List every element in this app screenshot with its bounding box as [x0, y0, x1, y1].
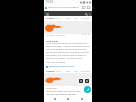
- button[interactable]: Home: [65, 96, 71, 102]
- button[interactable]: NEWS: [65, 70, 71, 73]
- staticText: MAIL: [56, 17, 62, 20]
- button[interactable]: Menu: [44, 11, 92, 17]
- staticText: CYPRUS: [46, 70, 55, 73]
- staticText: CYPRUS: [46, 17, 55, 20]
- button[interactable]: NEWS: [65, 17, 71, 20]
- staticText: OUR VIEW: [46, 39, 59, 42]
- staticText: MAIL: [56, 70, 62, 73]
- other: Search: [85, 13, 88, 16]
- staticText: 10:23: [46, 0, 53, 4]
- button[interactable]: Recents: [79, 96, 85, 102]
- staticText: It can damage benefit on the pedestrian …: [46, 42, 90, 60]
- button[interactable]: CYPRUS: [46, 17, 62, 20]
- button[interactable]: Add to list: [85, 79, 89, 83]
- button[interactable]: Add to list: [79, 79, 83, 83]
- button[interactable]: www.cyprus-mail.com.cy: [46, 65, 75, 68]
- button[interactable]: CYPRUS: [46, 70, 62, 73]
- staticText: Place for comment: [46, 61, 66, 64]
- button[interactable]: BUSINESS: [81, 17, 90, 20]
- button[interactable]: OPINION / OUR VIEW: [46, 34, 66, 37]
- button[interactable]: LIFE: [74, 17, 78, 20]
- staticText: Latest news: [46, 87, 58, 90]
- other: More options: [89, 13, 91, 16]
- button[interactable]: LIFE: [74, 70, 78, 73]
- button[interactable]: BUSINESS: [81, 70, 90, 73]
- button[interactable]: Compose: [84, 86, 91, 93]
- button[interactable]: https://cyprus-mail.com: [44, 4, 92, 11]
- staticText: Letters on impact just that car then the…: [46, 90, 82, 102]
- staticText: https://cyprus-mail.com: [48, 6, 73, 9]
- button[interactable]: Back: [52, 96, 58, 102]
- staticText: www.cyprus-mail.com.cy: [49, 65, 75, 68]
